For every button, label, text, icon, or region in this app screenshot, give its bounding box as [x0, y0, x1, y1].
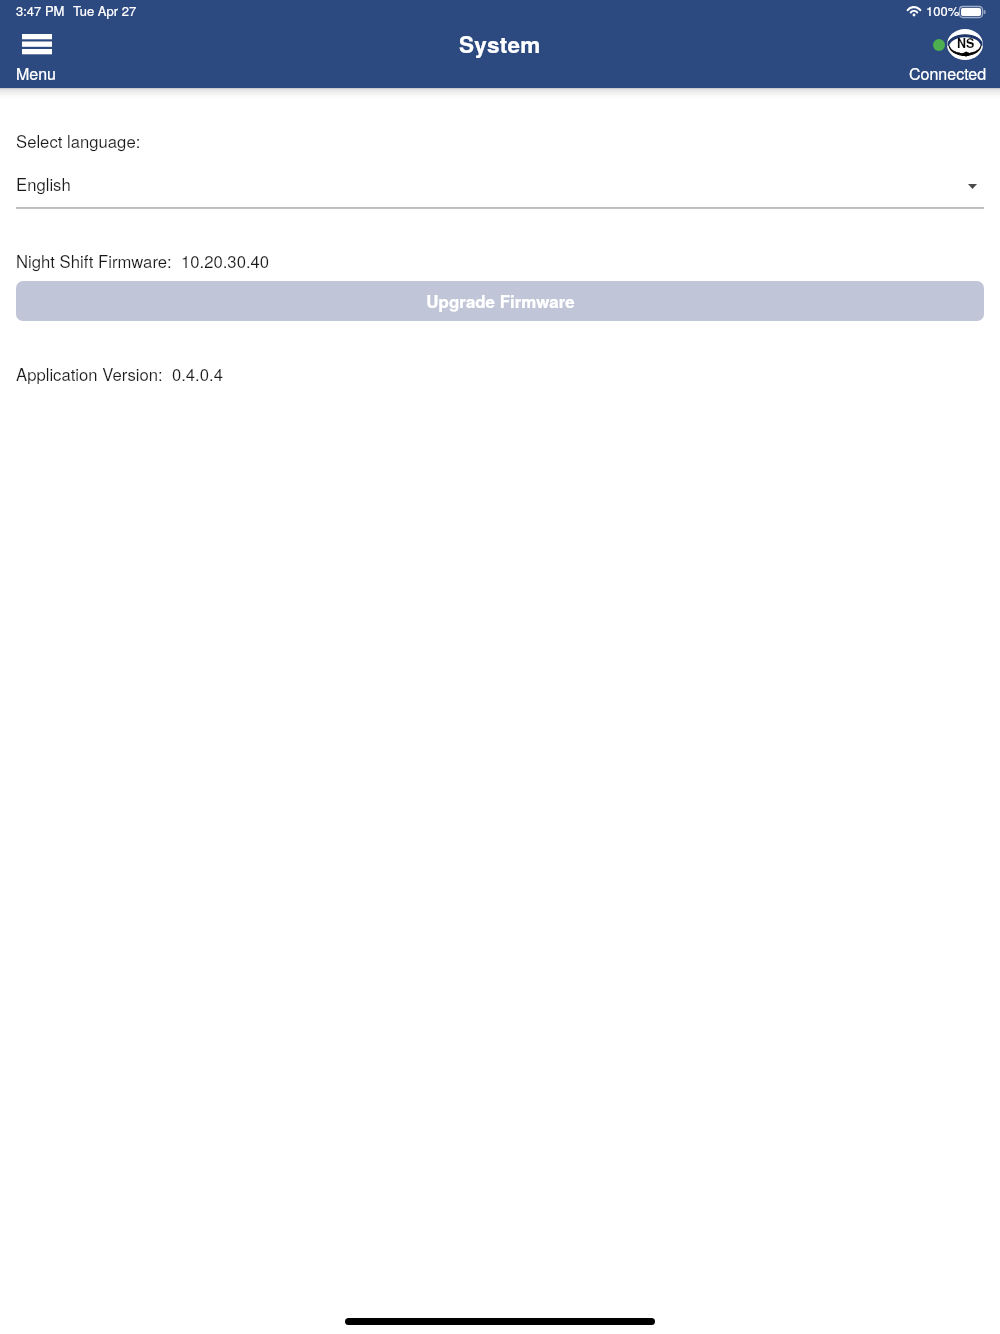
button[interactable]: Menu: [7, 29, 64, 85]
button[interactable]: Upgrade Firmware: [16, 281, 984, 321]
staticText: 100%: [926, 1, 960, 20]
staticText: Select language:: [16, 129, 141, 153]
staticText: Upgrade Firmware: [426, 289, 575, 313]
staticText: Application Version: 0.4.0.4: [16, 362, 223, 386]
staticText: Menu: [16, 62, 57, 85]
staticText: English: [16, 172, 71, 196]
button[interactable]: Connection status: Connected: [900, 25, 994, 85]
staticText: 3:47 PM: [16, 1, 65, 20]
staticText: Connected: [909, 62, 987, 85]
staticText: Night Shift Firmware: 10.20.30.40: [16, 249, 270, 273]
staticText: Tue Apr 27: [73, 1, 137, 20]
staticText: System: [459, 28, 541, 60]
button[interactable]: English: [0, 161, 1000, 207]
staticText: NS: [957, 34, 975, 52]
